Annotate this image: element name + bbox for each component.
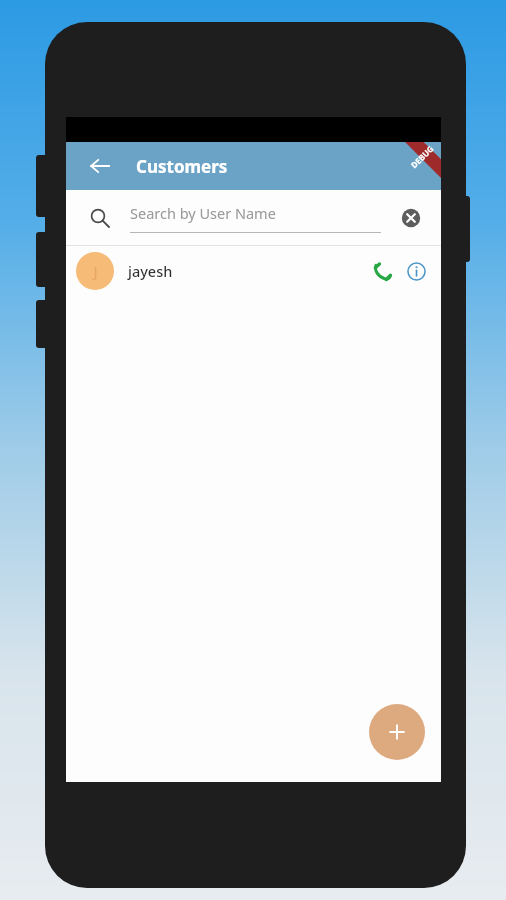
button[interactable]: Search (82, 200, 118, 236)
button[interactable]: Back (80, 146, 120, 186)
button[interactable]: Add customer (369, 704, 425, 760)
button[interactable]: Call jayesh (365, 254, 399, 288)
staticText: DEBUG (408, 143, 436, 170)
staticText: Search by User Name (130, 203, 276, 223)
staticText: jayesh (128, 261, 365, 281)
button[interactable]: J (66, 246, 441, 296)
staticText: Customers (136, 155, 228, 178)
button[interactable]: Clear search (395, 202, 427, 234)
staticText: J (93, 261, 98, 281)
button[interactable]: Customer info (399, 254, 433, 288)
